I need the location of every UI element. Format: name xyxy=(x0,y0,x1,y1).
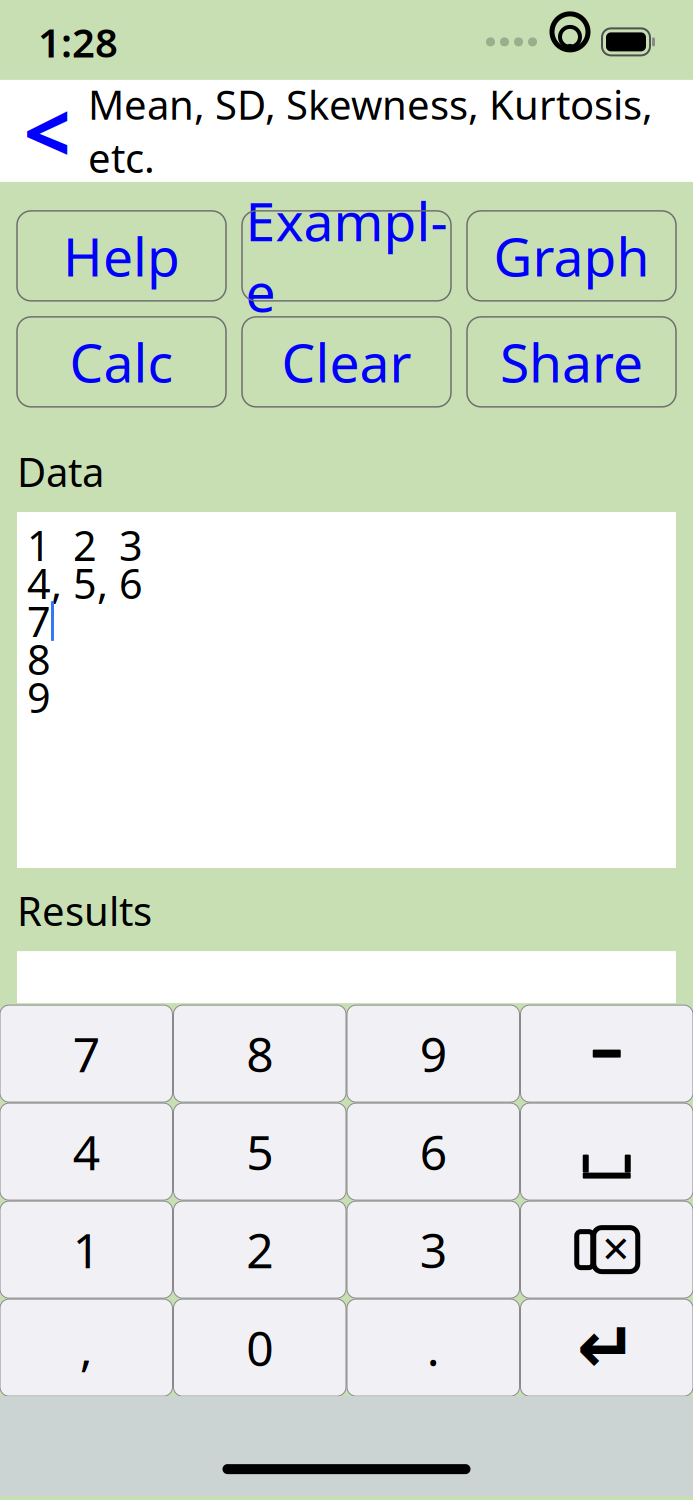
button[interactable]: Example xyxy=(242,211,451,301)
staticText: Example xyxy=(245,185,447,327)
staticText: 9 xyxy=(27,670,51,724)
button[interactable]: 9 xyxy=(347,1005,519,1102)
staticText: 1 xyxy=(73,1218,100,1281)
button[interactable]: 5 xyxy=(173,1103,346,1200)
staticText: 2 xyxy=(246,1218,273,1281)
staticText: 7 xyxy=(73,1022,100,1085)
button[interactable]: Clear xyxy=(242,317,451,407)
button[interactable]: Minus xyxy=(520,1005,693,1102)
button[interactable]: Space xyxy=(520,1103,693,1200)
staticText: Calc xyxy=(69,326,173,397)
button[interactable]: 3 xyxy=(347,1201,519,1298)
staticText: 0 xyxy=(246,1316,273,1379)
button[interactable]: . xyxy=(347,1299,519,1396)
staticText: Mean, SD, Skewness, Kurtosis, etc. xyxy=(88,78,653,184)
staticText: 7 xyxy=(27,594,51,648)
staticText: 4 xyxy=(73,1120,100,1183)
button[interactable]: Share xyxy=(467,317,676,407)
button[interactable]: Help xyxy=(17,211,226,301)
staticText: , xyxy=(80,1316,93,1379)
staticText: Help xyxy=(63,220,180,291)
button[interactable]: 2 xyxy=(173,1201,346,1298)
staticText: Graph xyxy=(493,220,649,291)
staticText: 8 xyxy=(27,632,51,686)
button[interactable]: Back xyxy=(12,81,82,181)
staticText: ✕ xyxy=(601,1229,631,1270)
staticText: Data xyxy=(17,445,104,498)
staticText: 8 xyxy=(246,1022,273,1085)
button[interactable]: 8 xyxy=(173,1005,346,1102)
button[interactable]: 0 xyxy=(173,1299,346,1396)
button[interactable]: Graph xyxy=(467,211,676,301)
button[interactable]: 1 xyxy=(0,1201,172,1298)
button[interactable]: 4 xyxy=(0,1103,172,1200)
staticText: < xyxy=(23,76,70,186)
staticText: Clear xyxy=(281,326,411,397)
staticText: 4, 5, 6 xyxy=(27,556,143,610)
staticText: 3 xyxy=(420,1218,447,1281)
staticText: 9 xyxy=(420,1022,447,1085)
staticText: Results xyxy=(17,884,152,937)
staticText: 1 2 3 xyxy=(27,518,143,572)
staticText: 1:28 xyxy=(38,15,118,68)
button[interactable]: Delete xyxy=(520,1201,693,1298)
button[interactable]: 6 xyxy=(347,1103,519,1200)
button[interactable]: , xyxy=(0,1299,172,1396)
button[interactable]: Return xyxy=(520,1299,693,1396)
button[interactable]: 7 xyxy=(0,1005,172,1102)
staticText: . xyxy=(427,1316,440,1379)
staticText: Share xyxy=(500,326,643,397)
staticText: ↵ xyxy=(577,1307,637,1388)
staticText: 5 xyxy=(246,1120,273,1183)
staticText: 6 xyxy=(420,1120,447,1183)
button[interactable]: Calc xyxy=(17,317,226,407)
